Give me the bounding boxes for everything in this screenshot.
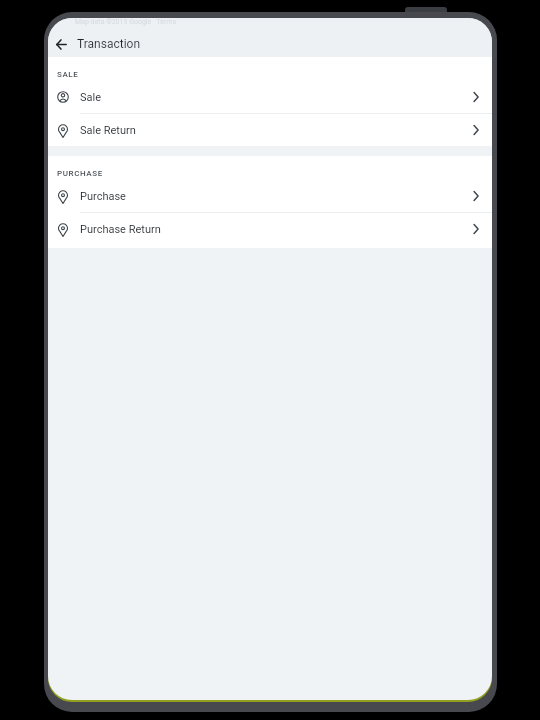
staticText: Purchase (80, 190, 126, 203)
button[interactable]: Purchase (48, 180, 492, 212)
staticText: PURCHASE (57, 169, 103, 178)
staticText: Transaction (77, 37, 141, 51)
staticText: Map data ©2019 Google Terms (75, 18, 176, 26)
staticText: SALE (57, 70, 79, 79)
staticText: Purchase Return (80, 223, 161, 236)
staticText: Sale (80, 91, 102, 104)
button[interactable]: Sale (48, 81, 492, 113)
staticText: Sale Return (80, 124, 136, 137)
button[interactable] (49, 32, 73, 56)
button[interactable]: Sale Return (48, 114, 492, 146)
button[interactable]: Purchase Return (48, 213, 492, 245)
